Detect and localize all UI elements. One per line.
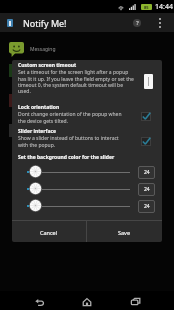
staticText: Slider interface — [18, 128, 57, 135]
staticText: Set a timeout for the screen light after… — [18, 69, 136, 94]
button[interactable]: Color slider — [29, 199, 42, 212]
button[interactable]: Recent apps — [125, 292, 145, 310]
button[interactable]: Back — [29, 292, 49, 310]
staticText: Lock orientation — [18, 104, 60, 111]
button[interactable]: Lock orientation — [12, 103, 162, 123]
button[interactable]: 24 — [138, 166, 155, 179]
button[interactable]: Help — [127, 13, 146, 32]
button[interactable]: Color slider — [29, 182, 42, 195]
button[interactable]: Save — [87, 221, 162, 242]
staticText: 14:44 — [155, 2, 173, 12]
staticText: Save — [118, 229, 131, 236]
staticText: Set the background color for the slider — [18, 154, 115, 161]
staticText: 85 — [144, 5, 149, 10]
button[interactable]: More options — [150, 13, 169, 32]
staticText: Cancel — [40, 229, 58, 236]
staticText: 24 — [144, 186, 150, 193]
button[interactable]: Home — [77, 292, 97, 310]
staticText: Dont change orientation of the popup whe… — [18, 111, 124, 124]
staticText: 24 — [144, 203, 150, 210]
staticText: Custom screen timeout — [18, 62, 77, 69]
button[interactable]: 24 — [138, 200, 155, 213]
staticText: Messaging — [30, 46, 56, 53]
button[interactable]: Timeout value — [144, 74, 153, 89]
button[interactable]: Custom screen timeout — [12, 61, 162, 95]
button[interactable]: Toggle setting — [141, 112, 151, 121]
button[interactable]: 24 — [138, 183, 155, 196]
staticText: Notify Me! — [23, 17, 67, 29]
button[interactable]: Toggle setting — [141, 137, 151, 146]
staticText: 24 — [144, 169, 150, 176]
button[interactable]: Cancel — [12, 221, 86, 242]
staticText: ? — [136, 19, 139, 27]
staticText: Show a slider instead of buttons to inte… — [18, 135, 124, 148]
button[interactable]: Color slider — [29, 165, 42, 178]
button[interactable]: Slider interface — [12, 127, 162, 147]
